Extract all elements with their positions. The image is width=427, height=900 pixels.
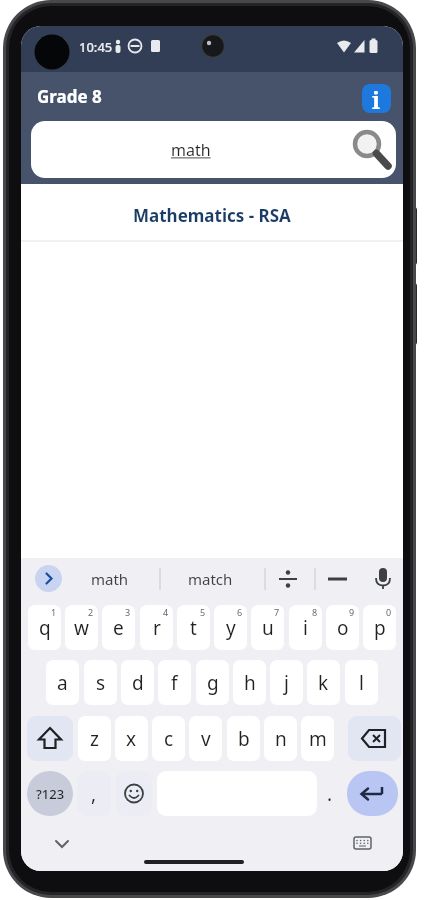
staticText: math	[171, 139, 211, 161]
staticText: a	[57, 670, 68, 696]
button[interactable]: z	[78, 716, 111, 761]
staticText: 5	[200, 606, 206, 618]
staticText: m	[309, 726, 327, 752]
staticText: Grade 8	[37, 85, 102, 108]
staticText: 0	[386, 606, 392, 618]
staticText: n	[275, 726, 287, 752]
staticText: k	[318, 670, 329, 696]
staticText: Mathematics - RSA	[133, 204, 291, 227]
button[interactable]: k	[307, 660, 340, 705]
button[interactable]: v	[189, 716, 222, 761]
button[interactable]: q	[28, 605, 61, 650]
button[interactable]: .	[319, 771, 341, 816]
staticText: c	[164, 726, 174, 752]
staticText: 4	[163, 606, 169, 618]
staticText: i	[303, 615, 308, 641]
staticText: 2	[88, 606, 94, 618]
staticText: 8	[312, 606, 318, 618]
staticText: 1	[51, 606, 57, 618]
staticText: h	[244, 670, 256, 696]
staticText: f	[171, 670, 178, 696]
button[interactable]: ,	[77, 771, 111, 816]
staticText: g	[207, 670, 219, 696]
staticText: j	[284, 670, 289, 696]
button[interactable]: g	[196, 660, 229, 705]
button[interactable]: s	[84, 660, 117, 705]
button[interactable]: a	[46, 660, 79, 705]
button[interactable]	[348, 716, 401, 761]
staticText: 6	[237, 606, 243, 618]
staticText: i	[372, 84, 381, 113]
button[interactable]	[116, 771, 152, 816]
button[interactable]: j	[270, 660, 303, 705]
staticText: ,	[91, 781, 97, 807]
button[interactable]: p	[363, 605, 396, 650]
button[interactable]: t	[177, 605, 210, 650]
staticText: z	[90, 726, 99, 752]
button[interactable]: i	[289, 605, 322, 650]
staticText: 7	[274, 606, 280, 618]
button[interactable]	[35, 565, 62, 592]
button[interactable]: n	[264, 716, 297, 761]
button[interactable]: h	[233, 660, 266, 705]
button[interactable]: d	[121, 660, 154, 705]
staticText: .	[327, 781, 333, 807]
staticText: u	[262, 615, 274, 641]
staticText: x	[126, 726, 137, 752]
button[interactable]: Mathematics - RSA	[21, 184, 403, 240]
button[interactable]: o	[326, 605, 359, 650]
button[interactable]: math	[31, 121, 396, 178]
button[interactable]: x	[115, 716, 148, 761]
staticText: r	[153, 615, 161, 641]
staticText: v	[201, 726, 211, 752]
button[interactable]: ?123	[27, 771, 73, 816]
staticText: 10:45	[79, 38, 113, 56]
button[interactable]: f	[158, 660, 191, 705]
staticText: 9	[349, 606, 355, 618]
button[interactable]: b	[227, 716, 260, 761]
staticText: s	[96, 670, 106, 696]
button[interactable]: w	[65, 605, 98, 650]
button[interactable]: math	[75, 558, 145, 600]
staticText: e	[113, 615, 124, 641]
button[interactable]	[347, 771, 398, 816]
button[interactable]: y	[214, 605, 247, 650]
staticText: 3	[125, 606, 131, 618]
staticText: o	[337, 615, 349, 641]
staticText: t	[190, 615, 197, 641]
staticText: b	[238, 726, 250, 752]
staticText: l	[359, 670, 364, 696]
button[interactable]: e	[102, 605, 135, 650]
button[interactable]: i	[362, 84, 391, 113]
button[interactable]	[27, 716, 73, 761]
staticText: d	[132, 670, 144, 696]
staticText: ?123	[36, 785, 65, 803]
staticText: match	[188, 569, 233, 589]
staticText: q	[39, 615, 51, 641]
button[interactable]: u	[251, 605, 284, 650]
staticText: y	[226, 615, 236, 641]
staticText: math	[91, 569, 129, 589]
button[interactable]: c	[152, 716, 185, 761]
button[interactable]: r	[140, 605, 173, 650]
button[interactable]: m	[301, 716, 334, 761]
button[interactable]: l	[345, 660, 378, 705]
staticText: w	[74, 615, 89, 641]
staticText: p	[374, 615, 386, 641]
button[interactable]: match	[175, 558, 245, 600]
